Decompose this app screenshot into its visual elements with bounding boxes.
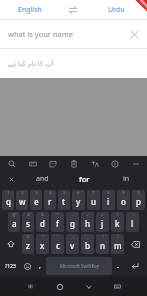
staticText: o — [121, 196, 126, 207]
staticText: h — [85, 218, 91, 229]
button[interactable]: 6 — [72, 190, 85, 210]
staticText: 3 — [35, 190, 38, 195]
staticText: 5 — [63, 190, 66, 195]
button[interactable]: 9 — [117, 190, 130, 210]
staticText: 0 — [137, 190, 140, 195]
staticText: g — [70, 218, 75, 229]
button[interactable]: + — [81, 212, 94, 232]
button[interactable]: 5 — [58, 190, 70, 210]
button[interactable]: 7 — [87, 190, 100, 210]
button[interactable]: ; — [81, 234, 94, 254]
button[interactable]: More options — [128, 156, 143, 171]
button[interactable]: 8 — [102, 190, 115, 210]
staticText: @ — [12, 212, 16, 217]
staticText: f — [56, 218, 59, 229]
staticText: e — [34, 196, 39, 207]
button[interactable]: 2 — [16, 190, 28, 210]
button[interactable]: and — [22, 171, 63, 187]
button[interactable]: Switch keyboard — [103, 277, 132, 296]
staticText: % — [26, 234, 30, 239]
staticText: ; — [87, 234, 89, 239]
button[interactable]: Swap languages — [60, 0, 86, 19]
button[interactable]: Recent apps — [16, 277, 45, 296]
button[interactable]: ) — [126, 212, 139, 232]
button[interactable]: آپ کا نام کیا ہے — [0, 49, 147, 78]
button[interactable]: Stickers — [45, 156, 60, 171]
button[interactable]: Enter — [124, 256, 145, 276]
staticText: : — [72, 234, 74, 239]
button[interactable]: Microsoft SwiftKey — [46, 257, 112, 275]
button[interactable]: ' — [51, 234, 64, 254]
staticText: x — [40, 240, 45, 251]
button[interactable]: Shift — [2, 234, 20, 254]
button[interactable]: @ — [8, 212, 20, 232]
button[interactable]: Theme — [107, 156, 122, 171]
staticText: z — [26, 240, 30, 251]
staticText: ?123 — [5, 263, 16, 270]
staticText: d — [40, 218, 45, 229]
staticText: ! — [102, 234, 104, 239]
button[interactable]: 3 — [30, 190, 42, 210]
button[interactable]: - — [66, 212, 79, 232]
button[interactable]: " — [36, 234, 49, 254]
staticText: r — [48, 196, 52, 207]
button[interactable]: Backspace — [126, 234, 145, 254]
staticText: , — [39, 261, 41, 271]
staticText: 7 — [92, 190, 95, 195]
button[interactable]: = — [96, 212, 109, 232]
button[interactable]: % — [22, 234, 34, 254]
button[interactable]: # — [22, 212, 34, 232]
staticText: . — [117, 261, 119, 271]
staticText: ( — [117, 212, 119, 217]
staticText: j — [101, 218, 104, 229]
staticText: q — [6, 196, 11, 207]
button[interactable]: ?123 — [2, 256, 18, 276]
button[interactable]: : — [66, 234, 79, 254]
button[interactable]: Urdu — [86, 0, 147, 19]
button[interactable]: Emoji — [20, 256, 34, 276]
staticText: k — [115, 218, 120, 229]
button[interactable]: Clipboard — [66, 156, 81, 171]
staticText: 2 — [21, 190, 24, 195]
staticText: * — [56, 212, 59, 217]
staticText: ) — [132, 212, 134, 217]
staticText: & — [41, 212, 44, 217]
button[interactable]: in — [105, 171, 147, 187]
staticText: / — [117, 234, 119, 239]
button[interactable]: 4 — [44, 190, 56, 210]
button[interactable]: Search — [4, 156, 19, 171]
button[interactable]: Clear text — [127, 27, 141, 41]
staticText: i — [107, 196, 110, 207]
button[interactable]: 1 — [2, 190, 14, 210]
staticText: u — [91, 196, 97, 207]
button[interactable]: 0 — [132, 190, 145, 210]
button[interactable]: Period — [114, 256, 122, 276]
staticText: in — [123, 174, 130, 184]
button[interactable]: ! — [96, 234, 109, 254]
staticText: w — [19, 196, 26, 207]
button[interactable]: Hide keyboard — [74, 277, 103, 296]
button[interactable]: Translate — [87, 156, 102, 171]
button[interactable]: GIF — [25, 156, 40, 171]
staticText: for — [79, 174, 90, 184]
button[interactable]: English — [0, 0, 60, 19]
staticText: c — [56, 240, 60, 251]
staticText: 8 — [107, 190, 110, 195]
staticText: a — [12, 218, 17, 229]
staticText: آپ کا نام کیا ہے — [8, 59, 54, 69]
button[interactable]: & — [36, 212, 49, 232]
button[interactable]: / — [111, 234, 124, 254]
button[interactable]: Voice or emoji suggestion — [0, 171, 22, 187]
staticText: Urdu — [108, 5, 125, 15]
staticText: l — [131, 218, 134, 229]
button[interactable]: what is your name — [0, 20, 147, 48]
staticText: = — [101, 212, 104, 217]
button[interactable]: ( — [111, 212, 124, 232]
button[interactable]: * — [51, 212, 64, 232]
staticText: 1 — [7, 190, 10, 195]
button[interactable]: for — [63, 171, 105, 187]
staticText: b — [85, 240, 90, 251]
staticText: ' — [57, 234, 58, 239]
button[interactable]: Comma — [36, 256, 44, 276]
button[interactable]: Home — [45, 277, 74, 296]
